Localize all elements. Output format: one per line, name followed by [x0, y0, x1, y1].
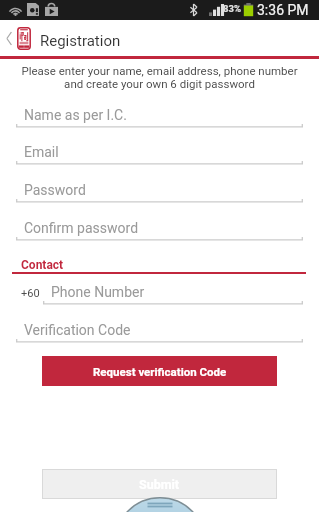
button[interactable]: Verification Code [16, 319, 303, 341]
staticText: 83% [223, 3, 241, 14]
staticText: +60 [21, 287, 40, 300]
staticText: Request verification Code [93, 365, 227, 378]
button[interactable]: Submit [43, 470, 276, 498]
button[interactable]: Phone Number [43, 281, 303, 303]
button[interactable]: Back [2, 20, 16, 56]
button[interactable]: Email [16, 141, 303, 163]
staticText: Password [24, 182, 86, 198]
button[interactable]: Name as per I.C. [16, 104, 303, 126]
staticText: Email [24, 144, 59, 160]
staticText: Verification Code [24, 322, 131, 338]
staticText: Confirm password [24, 220, 139, 236]
button[interactable]: Request verification Code [42, 356, 277, 386]
staticText: 3:36 PM [257, 2, 309, 18]
button[interactable]: Password [16, 179, 303, 201]
staticText: Registration [40, 32, 121, 50]
staticText: Please enter your name, email address, p… [0, 64, 319, 90]
button[interactable]: Confirm password [16, 217, 303, 239]
staticText: Contact [21, 258, 64, 272]
staticText: Submit [139, 477, 180, 492]
staticText: Name as per I.C. [24, 107, 127, 123]
staticText: Phone Number [51, 284, 145, 300]
